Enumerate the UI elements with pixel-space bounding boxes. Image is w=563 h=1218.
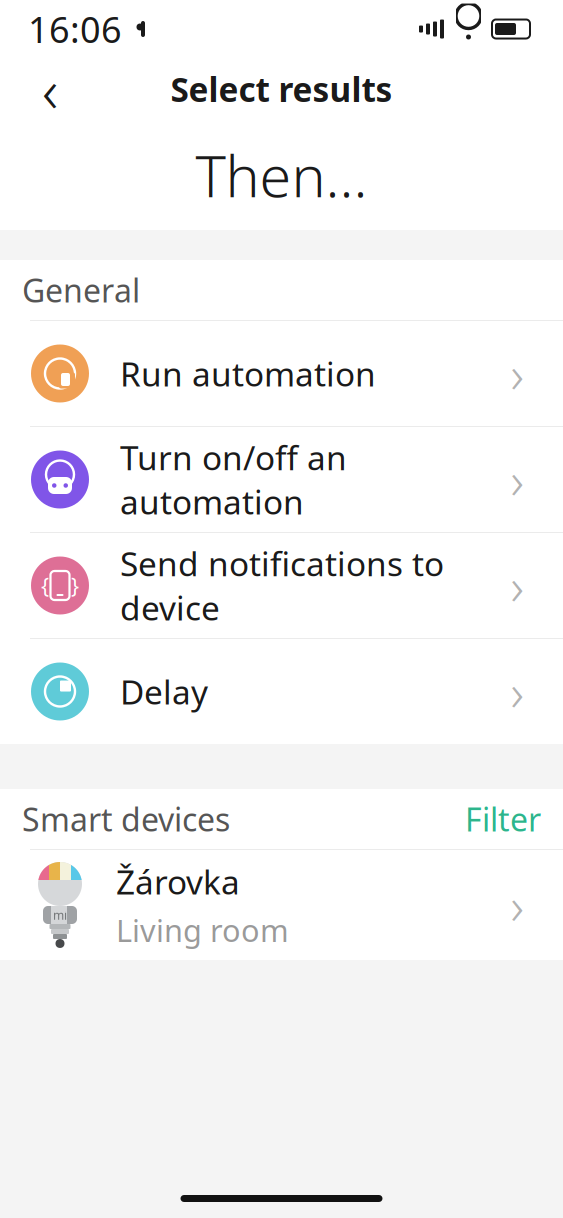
staticText: Living room bbox=[116, 910, 289, 950]
staticText: Turn on/off an automation bbox=[120, 435, 347, 524]
staticText: 16:06 bbox=[28, 5, 122, 53]
staticText: Žárovka bbox=[116, 859, 240, 904]
button[interactable]: Delay bbox=[0, 639, 563, 744]
staticText: Filter bbox=[465, 798, 541, 840]
button[interactable]: Back bbox=[22, 61, 78, 117]
staticText: Select results bbox=[170, 67, 392, 111]
button[interactable]: { bbox=[0, 533, 563, 638]
staticText: Delay bbox=[120, 669, 208, 714]
button[interactable]: Filter bbox=[445, 788, 541, 850]
staticText: › bbox=[510, 871, 523, 939]
staticText: Smart devices bbox=[22, 798, 230, 840]
button[interactable]: Run automation bbox=[0, 321, 563, 426]
staticText: { bbox=[41, 571, 49, 600]
staticText: Send notifications to device bbox=[120, 541, 444, 630]
staticText: ‹ bbox=[42, 48, 58, 130]
staticText: Run automation bbox=[120, 351, 376, 396]
staticText: mi bbox=[53, 907, 67, 923]
button[interactable]: mi bbox=[0, 850, 563, 960]
staticText: › bbox=[510, 658, 523, 725]
staticText: › bbox=[510, 446, 523, 513]
staticText: General bbox=[22, 269, 140, 311]
staticText: › bbox=[510, 340, 523, 407]
button[interactable]: Turn on/off an automation bbox=[0, 427, 563, 532]
staticText: Then... bbox=[195, 137, 367, 213]
staticText: › bbox=[510, 552, 523, 619]
staticText: } bbox=[71, 571, 79, 600]
